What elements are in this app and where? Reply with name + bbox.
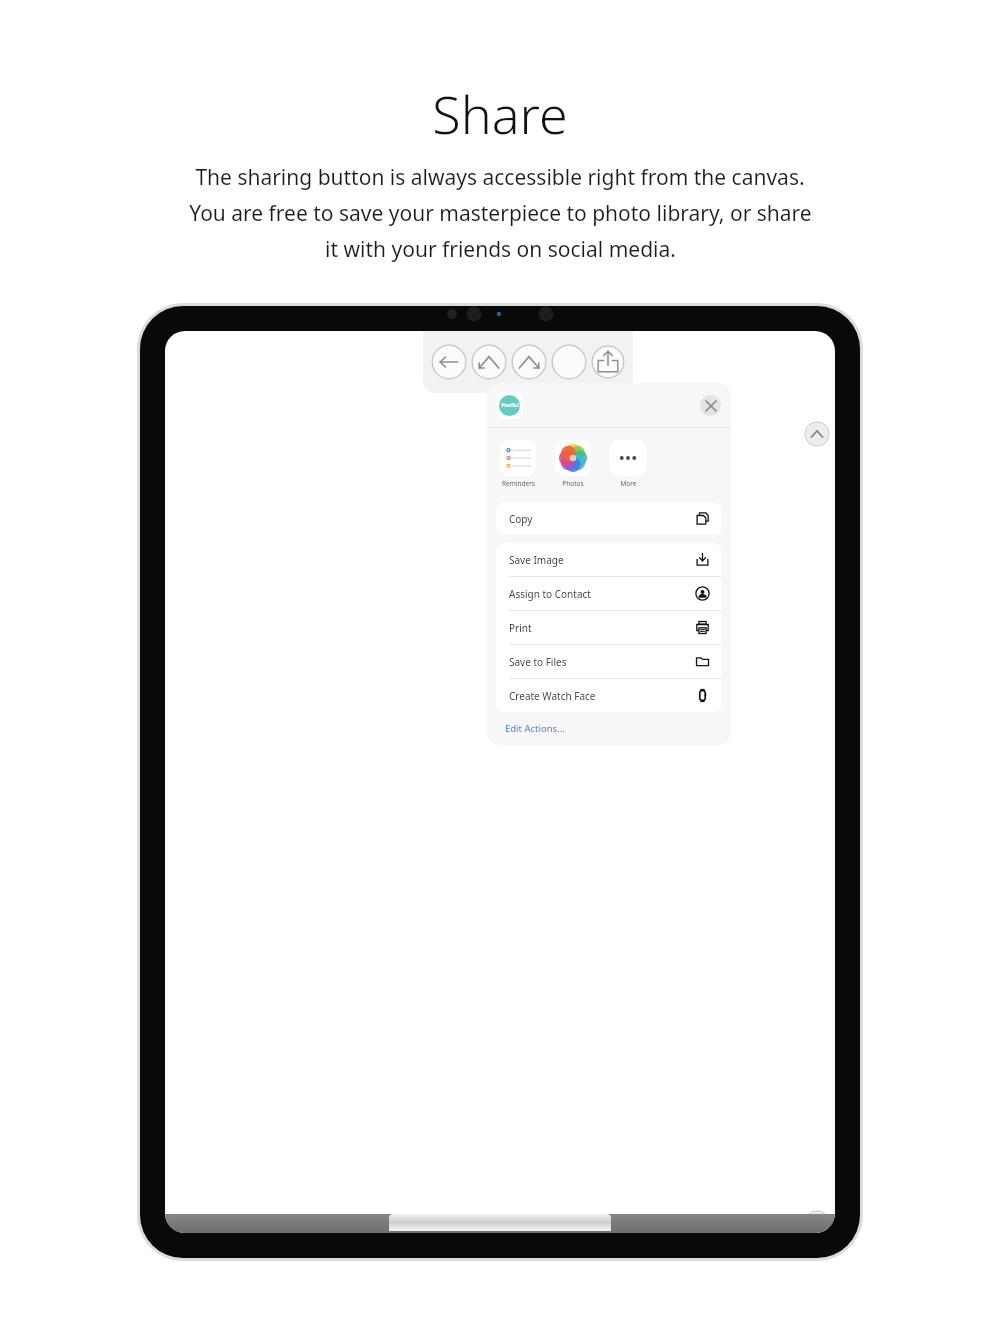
staticText: Pixelful xyxy=(501,402,519,409)
button[interactable]: More xyxy=(610,440,646,488)
button[interactable]: Reminders xyxy=(500,440,536,488)
button[interactable]: Redo xyxy=(511,344,547,380)
staticText: Assign to Contact xyxy=(509,587,591,601)
staticText: Reminders xyxy=(502,479,535,488)
staticText: Photos xyxy=(562,479,584,488)
button[interactable]: Assign to Contact xyxy=(496,577,722,610)
staticText: The sharing button is always accessible … xyxy=(195,163,805,192)
button[interactable]: App xyxy=(496,392,523,419)
button[interactable]: Print xyxy=(496,611,722,644)
button[interactable]: Undo xyxy=(471,344,507,380)
staticText: Save Image xyxy=(509,553,564,567)
button[interactable]: Create Watch Face xyxy=(496,679,722,712)
button[interactable]: Save to Files xyxy=(496,645,722,678)
button[interactable]: Edit Actions... xyxy=(487,712,731,745)
staticText: Create Watch Face xyxy=(509,689,596,703)
button[interactable]: Close xyxy=(700,395,721,416)
staticText: More xyxy=(620,479,637,488)
button[interactable]: Collapse panel top xyxy=(804,421,830,447)
staticText: Copy xyxy=(509,512,533,526)
button[interactable]: Collapse panel bottom xyxy=(804,1210,830,1233)
staticText: Print xyxy=(509,621,532,635)
staticText: Share xyxy=(432,78,568,149)
button[interactable]: Back xyxy=(431,344,467,380)
staticText: Edit Actions... xyxy=(505,722,565,735)
button[interactable]: Share xyxy=(591,344,625,380)
button[interactable]: Copy xyxy=(496,502,722,535)
staticText: it with your friends on social media. xyxy=(325,235,676,264)
staticText: Save to Files xyxy=(509,655,567,669)
button[interactable]: Photos xyxy=(555,440,591,488)
button[interactable]: Save Image xyxy=(496,543,722,576)
staticText: You are free to save your masterpiece to… xyxy=(189,199,812,228)
button[interactable]: Color xyxy=(551,344,587,380)
